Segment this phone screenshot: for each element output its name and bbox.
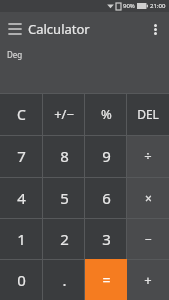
button[interactable]: 8 [43,135,85,177]
staticText: . [62,270,67,290]
button[interactable]: Open navigation menu [4,18,26,40]
button[interactable]: More options [144,18,166,40]
staticText: DEL [137,106,159,122]
button[interactable]: 2 [43,218,85,259]
button[interactable]: × [127,177,169,218]
staticText: C [17,105,26,124]
staticText: + [144,271,152,289]
staticText: 90% [123,2,135,10]
staticText: 2 [60,229,69,249]
staticText: 4 [17,188,26,208]
button[interactable]: +/− [43,93,85,135]
button[interactable]: 1 [0,218,43,259]
staticText: ÷ [144,147,152,165]
staticText: Deg [7,49,23,60]
button[interactable]: 3 [85,218,127,259]
button[interactable]: . [43,259,85,300]
button[interactable]: ÷ [127,135,169,177]
staticText: % [101,105,112,123]
button[interactable]: 4 [0,177,43,218]
button[interactable]: 7 [0,135,43,177]
staticText: 6 [102,188,111,208]
button[interactable]: 5 [43,177,85,218]
staticText: − [145,231,152,247]
staticText: 21:00 [150,2,166,10]
button[interactable]: C [0,93,43,135]
button[interactable]: − [127,218,169,259]
staticText: = [102,270,111,289]
button[interactable]: + [127,259,169,300]
button[interactable]: = [85,259,127,300]
staticText: × [145,190,152,206]
button[interactable]: % [85,93,127,135]
staticText: 3 [102,229,111,249]
staticText: 8 [60,146,69,166]
staticText: 9 [102,146,111,166]
staticText: 0 [17,270,26,290]
staticText: 7 [17,146,26,166]
button[interactable]: 6 [85,177,127,218]
staticText: +/− [54,105,74,123]
button[interactable]: DEL [127,93,169,135]
staticText: Calculator [28,20,90,38]
staticText: 5 [60,188,69,208]
button[interactable]: 9 [85,135,127,177]
button[interactable]: 0 [0,259,43,300]
staticText: 1 [17,229,26,249]
